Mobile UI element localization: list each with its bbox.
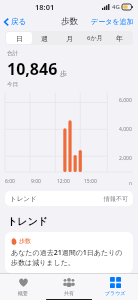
button[interactable]: 歩数 — [5, 232, 133, 273]
staticText: 共有 — [64, 290, 74, 296]
staticText: 15:00 — [84, 178, 97, 185]
staticText: 2,000 — [119, 155, 132, 162]
other: ブラウズ — [110, 277, 121, 288]
staticText: トレンド — [10, 195, 37, 203]
staticText: 歩数 — [61, 16, 78, 27]
staticText: 今日 — [7, 81, 18, 88]
staticText: 6か月 — [87, 34, 103, 42]
staticText: あなたの過去21週間の1日あたりの歩数は減りました。 — [11, 248, 127, 267]
button[interactable]: 週 — [32, 32, 57, 44]
staticText: 歩 — [60, 69, 67, 78]
staticText: 戻る — [11, 17, 27, 26]
staticText: 年 — [116, 34, 123, 43]
staticText: 9:00 — [31, 178, 41, 185]
button[interactable]: トレンド — [5, 191, 133, 206]
other: 共有 — [63, 277, 75, 288]
button[interactable]: 共有 — [46, 274, 92, 299]
staticText: 歩数 — [19, 237, 31, 245]
button[interactable]: データを追加 — [87, 15, 138, 28]
staticText: 概要 — [18, 290, 28, 296]
staticText: 月 — [66, 34, 73, 43]
staticText: 4G — [112, 3, 120, 11]
staticText: 4,000 — [119, 126, 132, 133]
staticText: 12:00 — [57, 178, 70, 185]
staticText: 18:01 — [35, 2, 55, 12]
button[interactable]: 月 — [57, 32, 82, 44]
staticText: トレンド — [7, 215, 48, 228]
staticText: データを追加 — [91, 17, 134, 26]
button[interactable]: 年 — [107, 32, 132, 44]
staticText: 日 — [16, 34, 23, 43]
staticText: ブラウズ — [105, 290, 126, 296]
staticText: 10,846 — [7, 58, 58, 80]
other: 概要 — [18, 277, 29, 288]
button[interactable]: 戻る — [0, 15, 31, 28]
staticText: 6,000 — [119, 97, 132, 104]
staticText: 週 — [41, 34, 48, 43]
button[interactable]: 6か月 — [82, 32, 107, 44]
staticText: 合計 — [7, 50, 18, 57]
button[interactable]: 日 — [6, 32, 32, 44]
button[interactable]: 概要 — [0, 274, 46, 299]
button[interactable]: ブラウズ — [92, 274, 138, 299]
staticText: 情報不可 — [104, 195, 128, 203]
staticText: 6:00 — [5, 178, 15, 185]
staticText: 0 — [129, 181, 132, 185]
